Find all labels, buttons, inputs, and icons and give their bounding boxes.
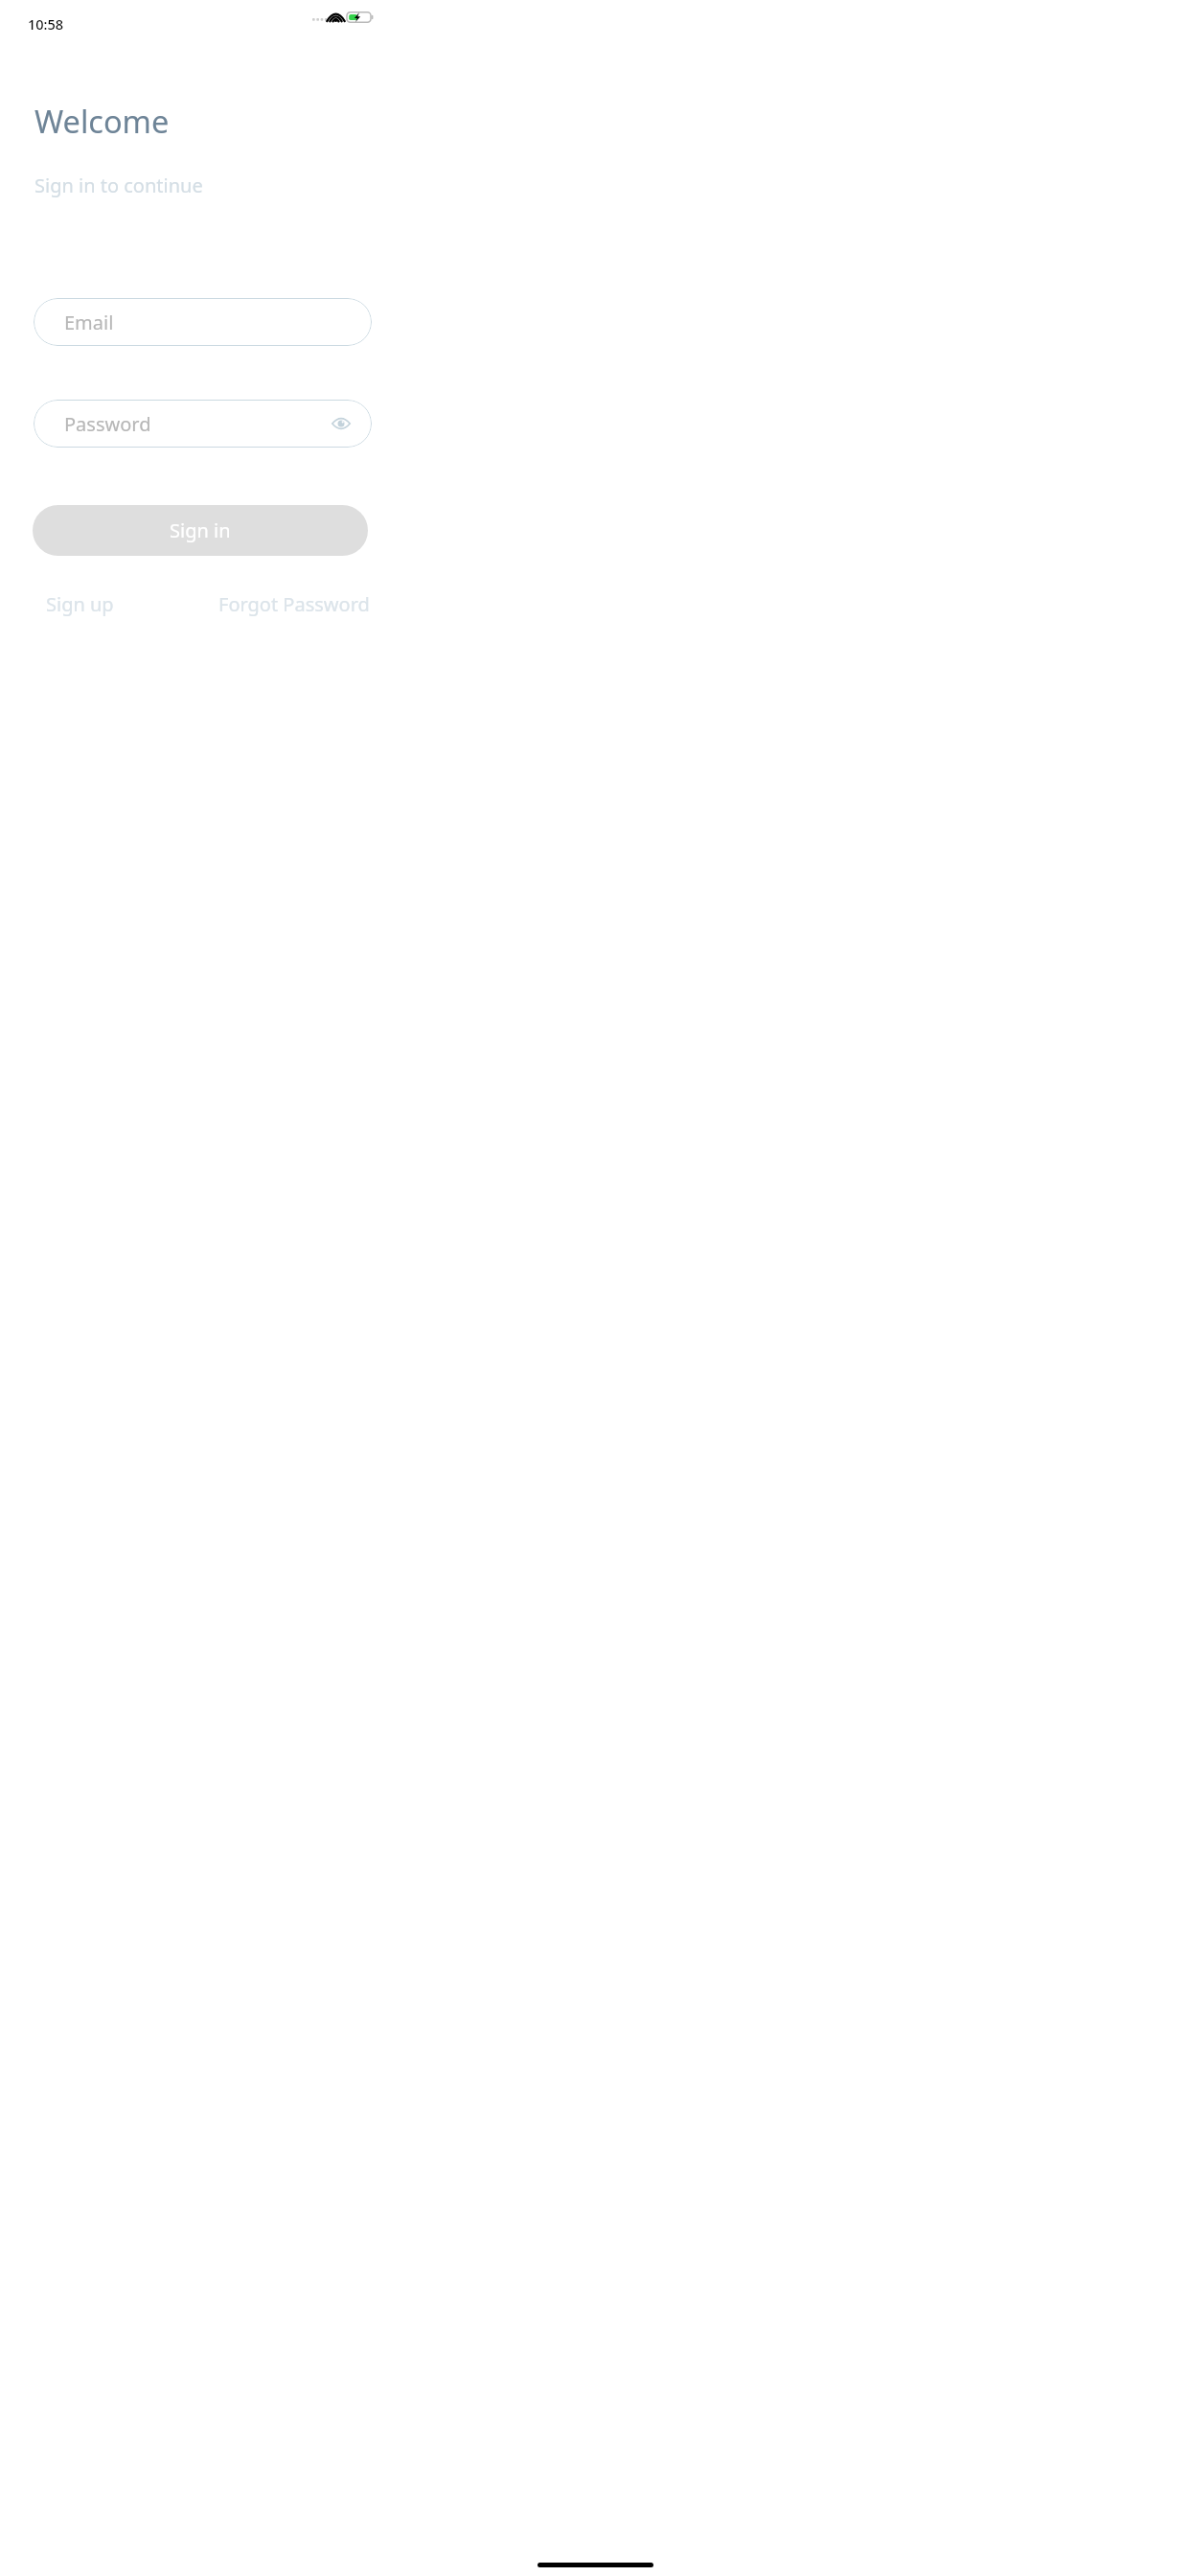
button[interactable]: Sign in (33, 505, 368, 556)
staticText: Password (64, 411, 151, 437)
staticText: Welcome (34, 100, 170, 142)
staticText: Sign in (170, 517, 231, 543)
staticText: Sign in to continue (34, 172, 203, 198)
button[interactable]: Sign up (42, 587, 118, 621)
staticText: Email (64, 310, 114, 335)
staticText: 10:58 (28, 14, 64, 34)
button[interactable]: Forgot Password (215, 587, 374, 621)
button[interactable]: Email (34, 298, 372, 346)
staticText: Sign up (46, 591, 114, 617)
staticText: Forgot Password (218, 591, 370, 617)
button[interactable]: Show password (331, 413, 352, 434)
button[interactable]: Password (34, 400, 372, 448)
